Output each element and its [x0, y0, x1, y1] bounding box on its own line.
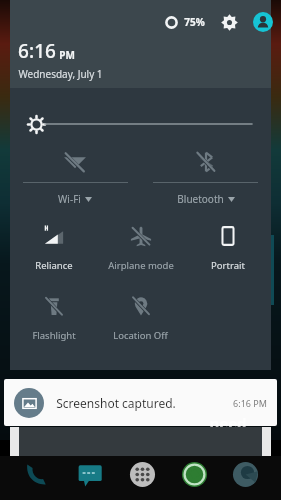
staticText: www.needrom.com	[196, 451, 261, 461]
staticText: Wi-Fi	[58, 192, 81, 206]
staticText: Flashlight	[32, 329, 76, 342]
staticText: need	[209, 413, 247, 433]
button[interactable]: App	[229, 458, 262, 491]
button[interactable]: Wi-Fi	[10, 143, 140, 206]
staticText: PM	[59, 48, 75, 62]
staticText: 6:16	[18, 38, 56, 64]
button[interactable]: Reliance	[10, 216, 97, 272]
button[interactable]: Screenshot captured.	[4, 379, 277, 426]
button[interactable]: Flashlight	[10, 286, 97, 342]
button[interactable]: Switch user	[251, 10, 275, 34]
staticText: 75%	[184, 15, 205, 29]
button[interactable]: Portrait	[184, 216, 271, 272]
staticText: Location Off	[113, 329, 168, 342]
staticText: Screenshot captured.	[56, 395, 176, 411]
staticText: Bluetooth	[177, 192, 224, 206]
button[interactable]: App	[74, 458, 107, 491]
staticText: Airplane mode	[108, 259, 174, 272]
staticText: Wednesday, July 1	[18, 67, 103, 81]
staticText: 6:16 PM	[233, 397, 267, 409]
button[interactable]: Battery 75 percent	[160, 11, 182, 33]
button[interactable]: Bluetooth	[140, 143, 271, 206]
button[interactable]: App	[178, 458, 211, 491]
button[interactable]: Settings	[217, 10, 241, 34]
staticText: Reliance	[35, 259, 73, 272]
button[interactable]: App	[20, 458, 53, 491]
staticText: Portrait	[211, 259, 245, 272]
button[interactable]: App	[126, 458, 159, 491]
button[interactable]: Brightness	[10, 112, 271, 136]
button[interactable]: Airplane mode	[97, 216, 184, 272]
button[interactable]: Location Off	[97, 286, 184, 342]
